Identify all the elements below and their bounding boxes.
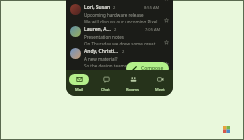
button[interactable]: Chat	[92, 70, 119, 96]
button[interactable]: Rooms	[119, 70, 146, 96]
staticText: Compose	[141, 65, 164, 72]
staticText: Lauren, Alan, Susan	[84, 26, 112, 33]
button[interactable]: Compose	[126, 62, 169, 75]
staticText: 2	[113, 5, 116, 10]
staticText: Chat	[101, 87, 110, 92]
staticText: On Thursday we drew some great ne...	[84, 41, 161, 45]
button[interactable]: Andy, Christian	[66, 45, 173, 67]
staticText: 2	[114, 27, 117, 32]
staticText: 8:55 AM	[144, 5, 160, 10]
staticText: So the design teams got together an...	[84, 63, 161, 67]
button[interactable]: Lori, Susan	[66, 1, 173, 23]
button[interactable]: On Friday we were working abou...	[66, 0, 173, 1]
staticText: Upcoming hardware release	[84, 12, 144, 18]
staticText: 2	[122, 49, 125, 54]
staticText: Meet	[155, 87, 165, 92]
staticText: Rooms	[126, 87, 139, 92]
staticText: Mail	[75, 87, 84, 92]
button[interactable]: Meet	[146, 70, 173, 96]
staticText: Lori, Susan	[84, 4, 111, 11]
staticText: Presentation notes	[84, 34, 124, 40]
button[interactable]: Lauren, Alan, Susan	[66, 23, 173, 45]
staticText: A new material?	[84, 56, 118, 62]
staticText: We will discuss our upcoming Pixel...	[84, 19, 161, 23]
staticText: Andy, Christian	[84, 48, 120, 55]
button[interactable]: Mail	[66, 70, 92, 96]
staticText: 7:05 AM	[145, 27, 161, 32]
